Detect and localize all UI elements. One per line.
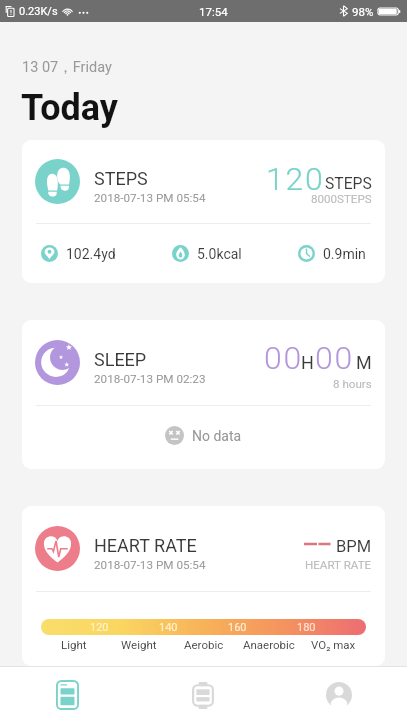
staticText: 180	[297, 621, 316, 634]
staticText: BPM	[336, 537, 372, 556]
staticText: 98%	[352, 5, 374, 18]
staticText: Anaerobic	[243, 638, 295, 651]
staticText: 0.23K/s	[19, 5, 58, 18]
button[interactable]: Profile	[271, 667, 407, 723]
staticText: 5.0kcal	[197, 246, 242, 262]
button[interactable]: HEART RATE	[22, 506, 385, 666]
button[interactable]: STEPS	[22, 140, 385, 283]
staticText: HEART RATE	[94, 535, 197, 556]
staticText: STEPS	[94, 168, 148, 189]
staticText: VO₂ max	[311, 638, 356, 651]
staticText: 00	[264, 339, 304, 377]
staticText: 2018-07-13 PM 05:54	[94, 191, 206, 205]
staticText: 140	[159, 621, 178, 634]
staticText: 2018-07-13 PM 05:54	[94, 558, 206, 572]
staticText: 17:54	[199, 5, 228, 18]
staticText: 0.9min	[323, 246, 366, 262]
staticText: No data	[192, 428, 242, 444]
button[interactable]: Device	[135, 667, 271, 723]
staticText: Light	[61, 638, 87, 651]
staticText: M	[356, 352, 372, 373]
staticText: 160	[228, 621, 247, 634]
staticText: 8000STEPS	[311, 192, 372, 206]
staticText: HEART RATE	[305, 558, 372, 572]
staticText: 2018-07-13 PM 02:23	[94, 372, 206, 386]
staticText: 120	[266, 160, 325, 198]
staticText: 13 07，Friday	[22, 58, 112, 76]
staticText: 102.4yd	[66, 246, 116, 262]
staticText: H	[301, 352, 314, 373]
staticText: Weight	[121, 638, 157, 651]
staticText: STEPS	[325, 174, 372, 192]
button[interactable]: SLEEP	[22, 320, 385, 469]
staticText: 120	[90, 621, 109, 634]
staticText: 8 hours	[333, 377, 372, 391]
staticText: Aerobic	[184, 638, 224, 651]
staticText: Today	[21, 87, 118, 129]
button[interactable]: Data	[0, 667, 135, 723]
staticText: SLEEP	[94, 349, 147, 370]
staticText: 00	[315, 339, 355, 377]
